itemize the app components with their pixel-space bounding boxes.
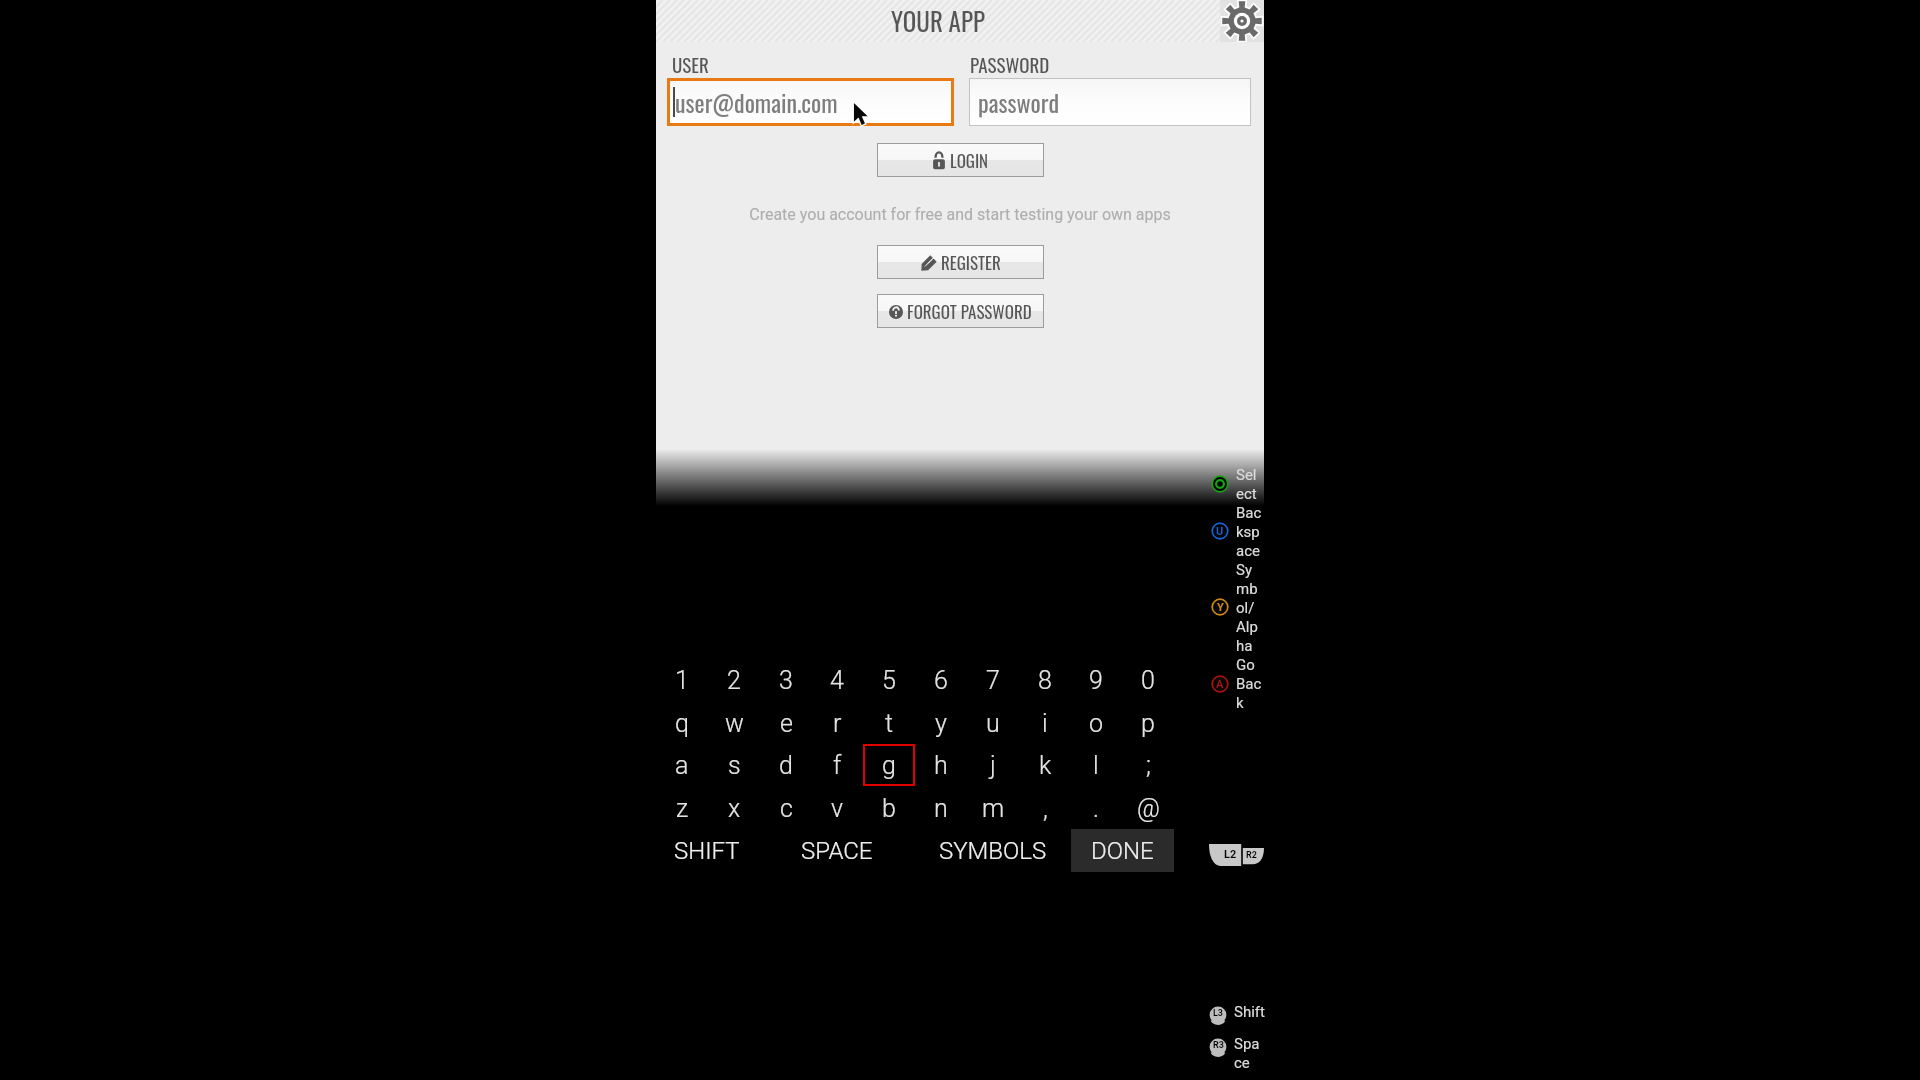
button[interactable]: Triggers: [1209, 844, 1264, 866]
button[interactable]: Space: [1208, 1037, 1228, 1057]
staticText: L2: [1224, 848, 1237, 861]
staticText: DONE: [1091, 837, 1154, 865]
button[interactable]: m: [967, 790, 1019, 826]
button[interactable]: ,: [1019, 790, 1071, 826]
staticText: 6: [934, 666, 948, 695]
staticText: @: [1137, 794, 1160, 823]
staticText: v: [831, 794, 844, 823]
button[interactable]: Gamepad button: [1211, 598, 1229, 616]
button[interactable]: v: [811, 790, 863, 826]
staticText: 9: [1089, 666, 1103, 695]
staticText: Space: [1234, 1035, 1264, 1072]
staticText: A: [1216, 678, 1224, 691]
button[interactable]: i: [1019, 705, 1071, 741]
button[interactable]: q: [656, 705, 708, 741]
button[interactable]: 9: [1070, 662, 1122, 698]
staticText: R3: [1213, 1040, 1224, 1051]
staticText: Y: [1217, 601, 1224, 614]
staticText: SHIFT: [674, 837, 740, 865]
staticText: Select Backspace Symbol/Alpha Go Back: [1236, 466, 1263, 712]
button[interactable]: 7: [967, 662, 1019, 698]
staticText: e: [780, 709, 793, 738]
staticText: Shift: [1234, 1003, 1274, 1021]
staticText: U: [1216, 525, 1224, 538]
staticText: L3: [1213, 1008, 1224, 1019]
staticText: 0: [1141, 666, 1155, 695]
staticText: YOUR APP: [891, 2, 985, 39]
staticText: p: [1141, 709, 1155, 738]
button[interactable]: FORGOT PASSWORD: [877, 294, 1044, 328]
staticText: y: [935, 709, 947, 738]
staticText: w: [725, 709, 744, 738]
staticText: h: [934, 751, 948, 780]
button[interactable]: 2: [708, 662, 760, 698]
button[interactable]: REGISTER: [877, 245, 1044, 279]
staticText: t: [885, 709, 894, 738]
button[interactable]: 8: [1019, 662, 1071, 698]
staticText: 7: [986, 666, 1000, 695]
button[interactable]: g: [863, 747, 915, 783]
button[interactable]: SYMBOLS: [931, 829, 1055, 872]
button[interactable]: l: [1070, 747, 1122, 783]
button[interactable]: 1: [656, 662, 708, 698]
button[interactable]: e: [760, 705, 812, 741]
button[interactable]: 3: [760, 662, 812, 698]
button[interactable]: a: [656, 747, 708, 783]
button[interactable]: x: [708, 790, 760, 826]
button[interactable]: w: [708, 705, 760, 741]
button[interactable]: f: [811, 747, 863, 783]
button[interactable]: SPACE: [775, 829, 899, 872]
staticText: x: [728, 794, 741, 823]
button[interactable]: d: [760, 747, 812, 783]
button[interactable]: Settings: [1220, 0, 1264, 42]
button[interactable]: c: [760, 790, 812, 826]
staticText: FORGOT PASSWORD: [907, 299, 1032, 324]
button[interactable]: p: [1122, 705, 1174, 741]
staticText: 5: [882, 666, 896, 695]
button[interactable]: b: [863, 790, 915, 826]
staticText: SPACE: [801, 837, 873, 865]
button[interactable]: DONE: [1071, 829, 1174, 872]
button[interactable]: Gamepad button: [1211, 475, 1229, 493]
button[interactable]: o: [1070, 705, 1122, 741]
button[interactable]: r: [811, 705, 863, 741]
staticText: ,: [1043, 794, 1048, 823]
button[interactable]: 6: [915, 662, 967, 698]
button[interactable]: s: [708, 747, 760, 783]
staticText: 4: [830, 666, 844, 695]
staticText: user@domain.com: [675, 84, 838, 120]
staticText: LOGIN: [950, 148, 989, 173]
button[interactable]: y: [915, 705, 967, 741]
button[interactable]: @: [1122, 790, 1174, 826]
button[interactable]: password: [969, 78, 1251, 126]
button[interactable]: t: [863, 705, 915, 741]
button[interactable]: z: [656, 790, 708, 826]
staticText: f: [833, 751, 842, 780]
button[interactable]: 5: [863, 662, 915, 698]
button[interactable]: Gamepad button: [1211, 522, 1229, 540]
button[interactable]: k: [1019, 747, 1071, 783]
button[interactable]: 0: [1122, 662, 1174, 698]
staticText: s: [728, 751, 741, 780]
button[interactable]: u: [967, 705, 1019, 741]
button[interactable]: j: [967, 747, 1019, 783]
staticText: Create you account for free and start te…: [738, 205, 1182, 224]
staticText: z: [676, 794, 689, 823]
button[interactable]: SHIFT: [645, 829, 769, 872]
button[interactable]: Gamepad button: [1211, 675, 1229, 693]
button[interactable]: user@domain.com: [667, 78, 954, 126]
staticText: password: [978, 84, 1060, 120]
button[interactable]: 4: [811, 662, 863, 698]
staticText: 8: [1038, 666, 1052, 695]
staticText: q: [675, 709, 689, 738]
staticText: 3: [779, 666, 793, 695]
staticText: d: [779, 751, 793, 780]
button[interactable]: ;: [1122, 747, 1174, 783]
staticText: 2: [727, 666, 741, 695]
button[interactable]: n: [915, 790, 967, 826]
button[interactable]: .: [1070, 790, 1122, 826]
button[interactable]: h: [915, 747, 967, 783]
staticText: PASSWORD: [970, 50, 1050, 78]
button[interactable]: Shift: [1208, 1005, 1228, 1025]
button[interactable]: LOGIN: [877, 143, 1044, 177]
